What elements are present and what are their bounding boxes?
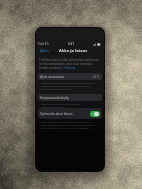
staticText: 82 % [93, 75, 100, 79]
staticText: Akku tukee tällä hetkellä normaalia huip… [41, 102, 99, 108]
staticText: Akku [42, 49, 49, 53]
staticText: Akun käyttöiän pidentämiseksi iPhone opp… [41, 120, 99, 129]
staticText: Puhelimesi akun tiedot tallennetaan lait… [39, 58, 101, 70]
staticText: Huippusuorituskyky [40, 96, 70, 100]
staticText: Telia 5G [38, 42, 49, 46]
button[interactable]: Puhelimesi akun tiedot tallennetaan lait… [39, 58, 101, 70]
button[interactable]: Optimoitu akun lataus [38, 108, 102, 119]
staticText: Akun varaustaso [40, 75, 65, 79]
staticText: Tämä arvio kuvaa akun kapasiteettia verr… [41, 81, 99, 90]
button[interactable]: Huippusuorituskyky [38, 94, 102, 101]
button[interactable]: Optimoitu akun lataus [90, 111, 100, 117]
staticText: 9.41 [68, 42, 74, 46]
staticText: Optimoitu akun lataus [40, 112, 73, 116]
staticText: Akku ja lataus [59, 48, 88, 53]
button[interactable]: Akun varaustaso [38, 73, 102, 80]
button[interactable]: Akku [40, 49, 50, 53]
